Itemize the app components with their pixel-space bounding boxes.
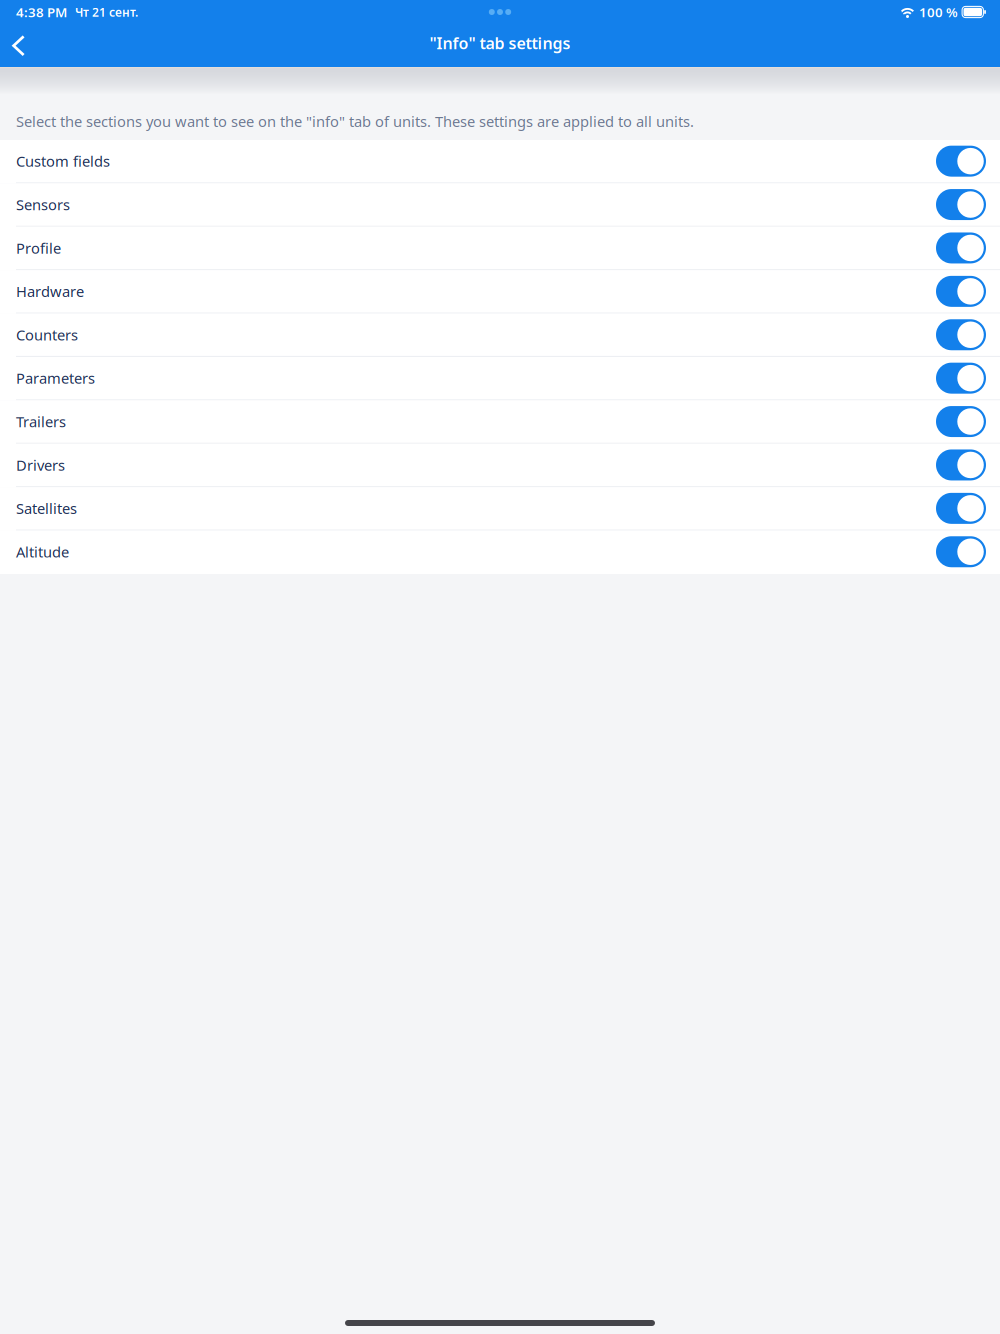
button[interactable]: Parameters [0,357,1000,400]
button[interactable]: Trailers [936,406,986,437]
button[interactable]: Custom fields [936,146,986,177]
button[interactable]: Profile [936,232,986,263]
button[interactable]: Counters [936,319,986,350]
staticText: Profile [16,238,61,258]
staticText: Select the sections you want to see on t… [16,111,694,131]
staticText: Sensors [16,195,70,214]
button[interactable]: Altitude [0,531,1000,574]
staticText: 100 % [919,3,958,21]
staticText: Trailers [16,412,66,431]
button[interactable]: Back [12,24,44,67]
button[interactable]: Custom fields [0,140,1000,183]
staticText: Counters [16,325,78,344]
button[interactable]: Parameters [936,363,986,394]
staticText: Parameters [16,368,95,388]
staticText: Custom fields [16,151,110,171]
staticText: "Info" tab settings [429,32,570,54]
button[interactable]: Sensors [936,189,986,220]
button[interactable]: Drivers [0,444,1000,487]
button[interactable]: Profile [0,227,1000,270]
staticText: Drivers [16,455,65,475]
button[interactable]: Altitude [936,536,986,567]
button[interactable]: Satellites [936,493,986,524]
button[interactable]: Drivers [936,449,986,480]
staticText: Satellites [16,499,77,518]
button[interactable]: Sensors [0,183,1000,227]
staticText: Altitude [16,542,69,561]
button[interactable]: Hardware [936,276,986,307]
staticText: Hardware [16,282,84,301]
button[interactable]: Hardware [0,270,1000,314]
button[interactable]: Counters [0,314,1000,357]
button[interactable]: Trailers [0,400,1000,444]
staticText: Чт 21 сент. [75,4,138,20]
button[interactable]: Satellites [0,487,1000,531]
staticText: 4:38 PM [16,3,67,21]
